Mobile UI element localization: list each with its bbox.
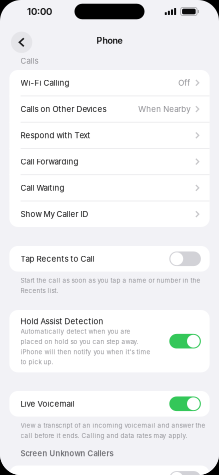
button[interactable]: Wi-Fi Calling [9, 70, 210, 96]
button[interactable]: Show My Caller ID [9, 201, 210, 227]
button[interactable]: Call Waiting [9, 175, 210, 201]
button[interactable]: Call Forwarding [9, 149, 210, 174]
button[interactable]: Silence Unknown Callers [9, 465, 210, 475]
staticText: Tap Recents to Call [21, 254, 95, 264]
staticText: Calls on Other Devices [21, 104, 107, 114]
staticText: Call Waiting [21, 183, 65, 193]
button[interactable]: Hold Assist Detection [9, 310, 210, 372]
button[interactable]: Respond with Text [9, 122, 210, 148]
staticText: Respond with Text [21, 131, 91, 140]
staticText: Automatically detect when you are placed… [21, 328, 151, 366]
button[interactable]: Tap Recents to Call [9, 246, 210, 272]
staticText: 10:00 [27, 6, 52, 17]
staticText: Hold Assist Detection [21, 316, 104, 326]
staticText: When Nearby [138, 104, 190, 114]
staticText: Show My Caller ID [21, 209, 89, 219]
button[interactable]: Back to Calls [0, 23, 38, 66]
staticText: Wi-Fi Calling [21, 78, 70, 88]
staticText: Phone [96, 35, 122, 46]
staticText: Screen Unknown Callers [21, 449, 114, 458]
staticText: Call Forwarding [21, 157, 79, 166]
button[interactable]: Live Voicemail [9, 391, 210, 417]
staticText: Calls [20, 56, 38, 66]
staticText: Live Voicemail [21, 399, 75, 409]
staticText: Start the call as soon as you tap a name… [21, 277, 201, 294]
staticText: Off [178, 78, 190, 88]
staticText: View a transcript of an incoming voicema… [21, 422, 206, 439]
button[interactable]: Calls on Other Devices [9, 96, 210, 122]
